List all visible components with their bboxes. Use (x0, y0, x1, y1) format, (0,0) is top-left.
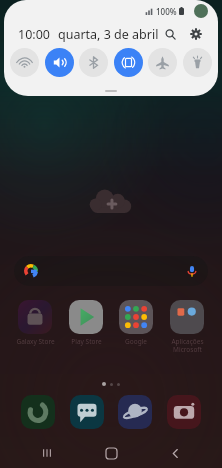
button[interactable]: Camera (164, 392, 204, 432)
staticText: Galaxy Store (16, 337, 55, 346)
staticText: quarta, 3 de abril (58, 26, 159, 43)
button[interactable]: Flashlight (183, 48, 212, 77)
button[interactable]: Back (158, 438, 192, 468)
button[interactable]: Bluetooth (79, 48, 108, 77)
button[interactable]: Play Store (62, 300, 110, 346)
button[interactable]: Recents (30, 438, 64, 468)
staticText: Google (125, 337, 147, 346)
button[interactable]: Airplane mode (148, 48, 177, 77)
button[interactable] (14, 256, 208, 286)
button[interactable]: Internet (115, 392, 155, 432)
staticText: 10:00 (18, 26, 50, 43)
button[interactable]: Settings (186, 24, 206, 44)
button[interactable]: Messages (67, 392, 107, 432)
button[interactable]: Home (94, 438, 128, 468)
button[interactable]: Aplicações Microsoft (163, 300, 211, 354)
button[interactable]: Phone (18, 392, 58, 432)
staticText: Play Store (71, 337, 102, 346)
staticText: 100% (156, 6, 177, 17)
button[interactable]: Sound (45, 48, 74, 77)
button[interactable]: Google (112, 300, 160, 346)
staticText: Aplicações Microsoft (171, 337, 204, 354)
button[interactable]: Wi-Fi (10, 48, 39, 77)
button[interactable]: Add widget (87, 186, 135, 216)
button[interactable]: Search (160, 24, 180, 44)
button[interactable]: Auto rotate (114, 48, 143, 77)
button[interactable]: Galaxy Store (11, 300, 59, 346)
